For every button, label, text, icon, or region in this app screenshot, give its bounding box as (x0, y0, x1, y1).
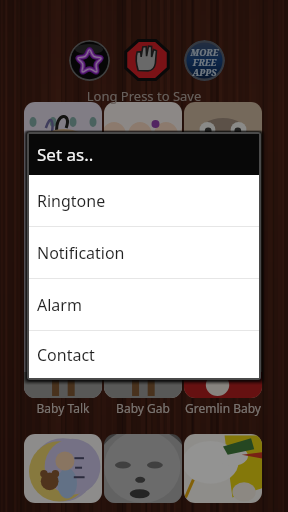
button[interactable] (104, 434, 182, 503)
button[interactable] (184, 102, 262, 398)
button[interactable]: Save favourite (69, 40, 110, 81)
button[interactable]: Ringtone (29, 175, 259, 227)
staticText: Ringtone (37, 190, 106, 212)
staticText: Alarm (37, 294, 82, 316)
button[interactable] (24, 434, 102, 503)
staticText: Baby Gab (104, 400, 182, 416)
button[interactable] (184, 434, 262, 503)
staticText: Notification (37, 242, 125, 264)
button[interactable]: Gremlin Baby (184, 400, 262, 416)
staticText: Long Press to Save (0, 87, 288, 105)
button[interactable]: More free apps (184, 40, 225, 81)
staticText: Gremlin Baby (184, 400, 262, 416)
button[interactable]: Baby Talk (24, 400, 102, 416)
button[interactable]: Notification (29, 227, 259, 279)
staticText: MORE FREE APPS (184, 46, 225, 81)
button[interactable] (104, 102, 182, 398)
staticText: Set as.. (37, 143, 94, 166)
button[interactable]: Baby Gab (104, 400, 182, 416)
button[interactable] (24, 102, 102, 398)
staticText: Baby Talk (24, 400, 102, 416)
button[interactable]: Stop (123, 38, 171, 82)
button[interactable]: Contact (29, 331, 259, 378)
button[interactable]: Alarm (29, 279, 259, 331)
staticText: Contact (37, 344, 95, 366)
